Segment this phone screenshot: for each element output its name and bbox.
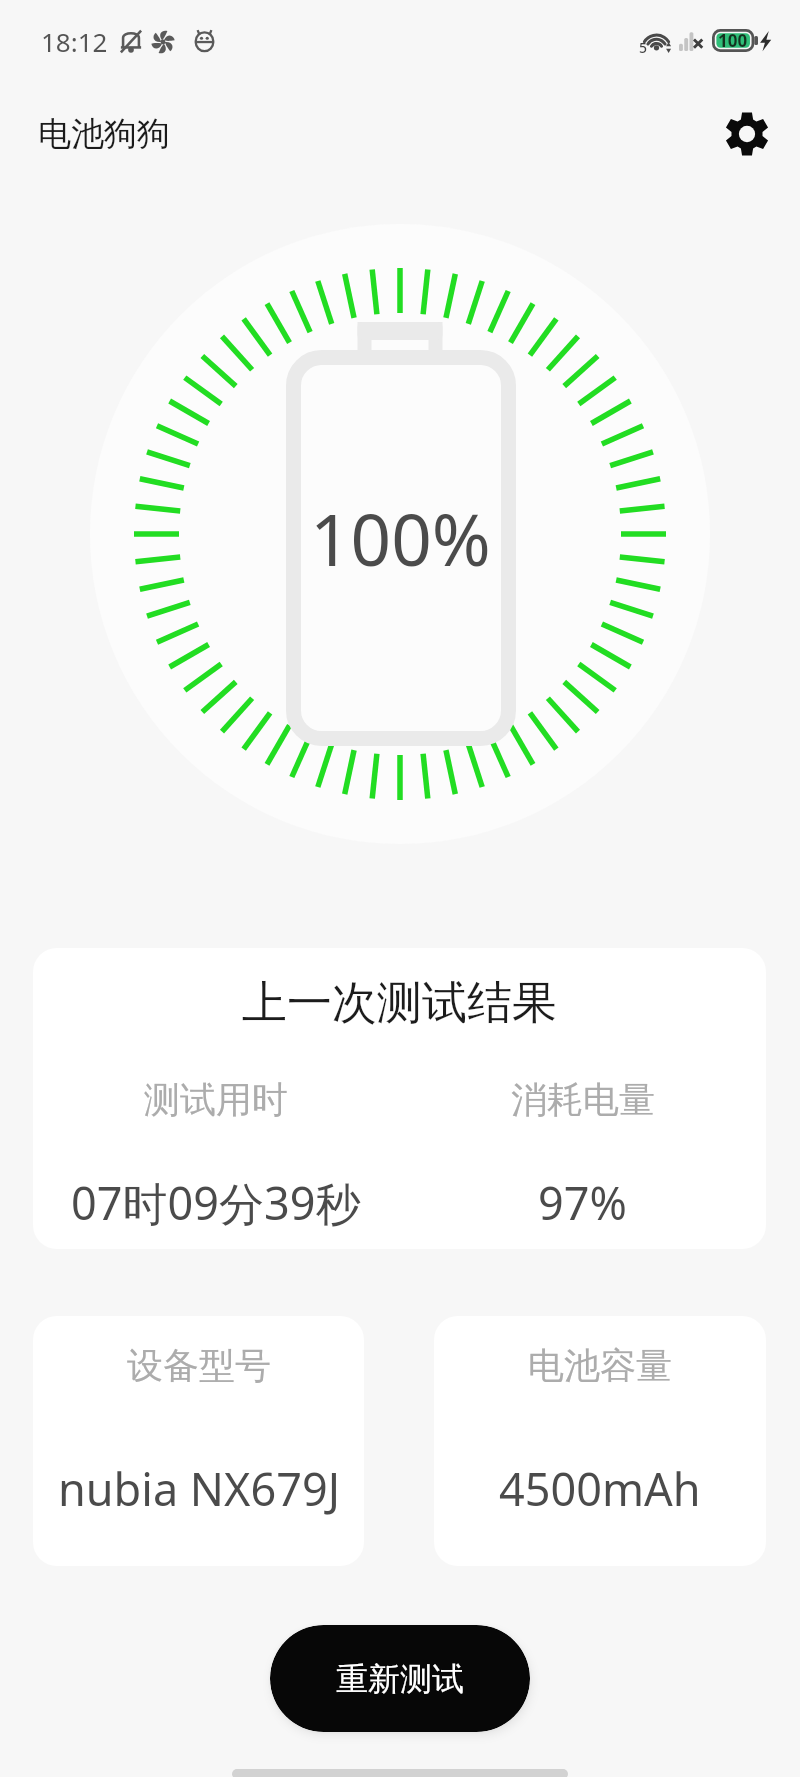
staticText: 上一次测试结果 — [33, 975, 766, 1032]
staticText: 100% — [310, 490, 491, 587]
staticText: 07时09分39秒 — [71, 1172, 361, 1233]
staticText: 5 — [639, 38, 648, 57]
staticText: 电池容量 — [528, 1343, 672, 1388]
button[interactable]: 上一次测试结果 — [33, 948, 766, 1249]
staticText: 97% — [538, 1172, 627, 1233]
staticText: 电池狗狗 — [38, 113, 170, 155]
button[interactable]: Settings — [719, 106, 775, 162]
button[interactable]: 重新测试 — [270, 1625, 530, 1732]
staticText: 测试用时 — [144, 1077, 288, 1122]
staticText: 设备型号 — [127, 1343, 271, 1388]
staticText: 4500mAh — [499, 1458, 701, 1519]
button[interactable]: 设备型号 — [33, 1316, 364, 1566]
staticText: nubia NX679J — [58, 1458, 340, 1519]
button[interactable]: 电池容量 — [434, 1316, 766, 1566]
staticText: 消耗电量 — [511, 1077, 655, 1122]
staticText: 18:12 — [41, 24, 108, 59]
staticText: 重新测试 — [336, 1659, 464, 1699]
staticText: 100 — [718, 29, 748, 52]
